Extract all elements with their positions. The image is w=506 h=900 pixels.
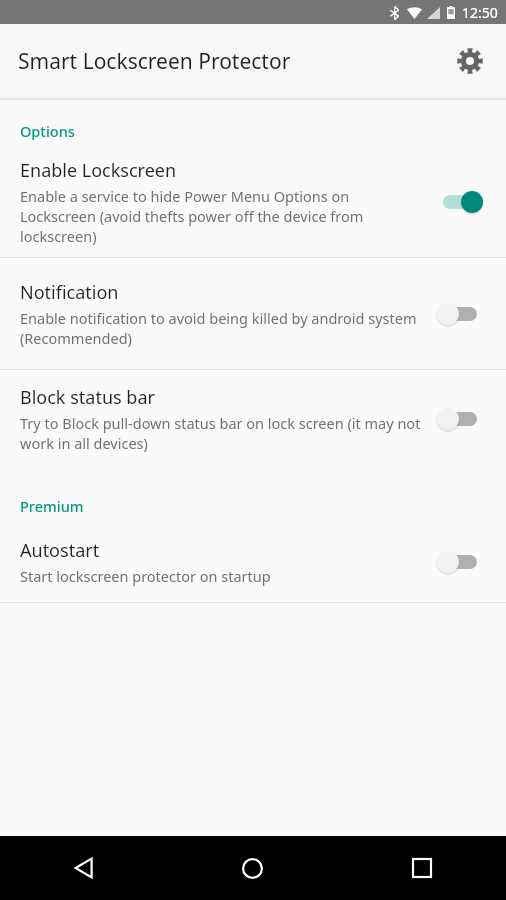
staticText: Options [20,121,75,141]
button[interactable]: Recent apps [337,836,506,900]
button[interactable]: Enable Lockscreen [0,147,506,257]
button[interactable]: Back [0,836,168,900]
button[interactable]: Block status bar [0,370,506,467]
staticText: Autostart [20,538,100,563]
button[interactable]: Off [436,542,488,582]
button[interactable]: Off [436,294,488,334]
staticText: Block status bar [20,385,155,410]
staticText: Enable Lockscreen [20,158,177,183]
staticText: Enable a service to hide Power Menu Opti… [20,186,424,246]
staticText: Smart Lockscreen Protector [18,47,291,76]
button[interactable]: Home [168,836,337,900]
staticText: 12:50 [462,3,498,22]
staticText: Premium [20,496,84,516]
button[interactable]: Settings [446,37,494,85]
staticText: Enable notification to avoid being kille… [20,308,424,348]
button[interactable]: On [436,182,488,222]
button[interactable]: Notification [0,258,506,369]
staticText: Try to Block pull-down status bar on loc… [20,413,424,453]
button[interactable]: Autostart [0,522,506,602]
staticText: Start lockscreen protector on startup [20,566,271,586]
staticText: Notification [20,280,119,305]
button[interactable]: Off [436,399,488,439]
